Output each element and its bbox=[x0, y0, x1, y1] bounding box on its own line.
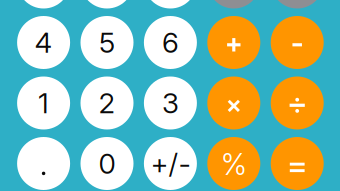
button[interactable]: 3 bbox=[144, 76, 197, 129]
staticText: 2 bbox=[98, 86, 115, 120]
staticText: 4 bbox=[35, 26, 53, 59]
button[interactable]: 1 bbox=[17, 76, 70, 129]
button[interactable]: Percent bbox=[207, 137, 260, 190]
staticText: 1 bbox=[38, 86, 49, 120]
staticText: 0 bbox=[98, 147, 115, 180]
button[interactable]: 5 bbox=[80, 16, 133, 69]
button[interactable]: Multiply bbox=[207, 76, 260, 129]
staticText: 5 bbox=[99, 26, 115, 59]
button[interactable]: 6 bbox=[144, 16, 197, 69]
button[interactable]: Decimal point bbox=[17, 137, 70, 190]
button[interactable]: 4 bbox=[17, 16, 70, 69]
button[interactable]: Subtract bbox=[271, 16, 324, 69]
button[interactable]: Divide bbox=[271, 76, 324, 129]
staticText: +/- bbox=[150, 147, 190, 180]
button[interactable]: 2 bbox=[80, 76, 133, 129]
staticText: 6 bbox=[162, 26, 179, 59]
button[interactable]: Add bbox=[207, 16, 260, 69]
button[interactable]: Equals bbox=[271, 137, 324, 190]
button[interactable]: +/- bbox=[144, 137, 197, 190]
button[interactable]: 0 bbox=[80, 137, 133, 190]
staticText: % bbox=[221, 147, 247, 182]
staticText: 3 bbox=[162, 86, 179, 120]
